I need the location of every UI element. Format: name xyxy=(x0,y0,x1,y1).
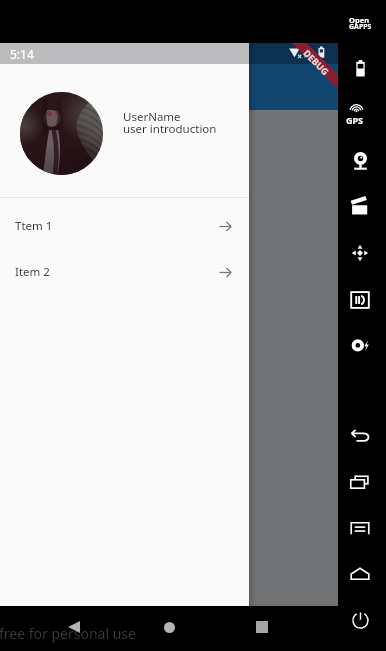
button[interactable]: D-pad xyxy=(345,238,375,268)
staticText: DEBUG xyxy=(301,47,332,77)
button[interactable]: Record screen xyxy=(345,191,375,221)
staticText: free for personal use xyxy=(0,624,136,643)
staticText: UserName xyxy=(123,109,181,125)
button[interactable]: Recents xyxy=(244,609,280,645)
staticText: 5:14 xyxy=(10,46,34,62)
button[interactable]: Record xyxy=(345,330,375,360)
button[interactable]: Camera xyxy=(345,145,375,175)
button[interactable]: Phone ID xyxy=(345,285,375,315)
button[interactable]: Back xyxy=(345,421,375,451)
staticText: user introduction xyxy=(123,121,217,137)
button[interactable]: Battery xyxy=(345,53,375,83)
staticText: GPS xyxy=(346,114,364,126)
button[interactable]: Back xyxy=(56,609,92,645)
button[interactable]: Power xyxy=(345,605,375,635)
button[interactable]: Overview xyxy=(345,467,375,497)
button[interactable]: Home xyxy=(151,609,187,645)
button[interactable]: Keyboard xyxy=(345,513,375,543)
staticText: GAPPS xyxy=(349,22,372,32)
button[interactable]: Home xyxy=(345,559,375,589)
button[interactable]: Ttem 1 xyxy=(0,203,249,249)
staticText: Open xyxy=(349,15,370,25)
button[interactable]: GPS xyxy=(345,99,375,129)
staticText: Item 2 xyxy=(15,264,50,280)
button[interactable]: Item 2 xyxy=(0,249,249,295)
staticText: Ttem 1 xyxy=(15,218,53,234)
